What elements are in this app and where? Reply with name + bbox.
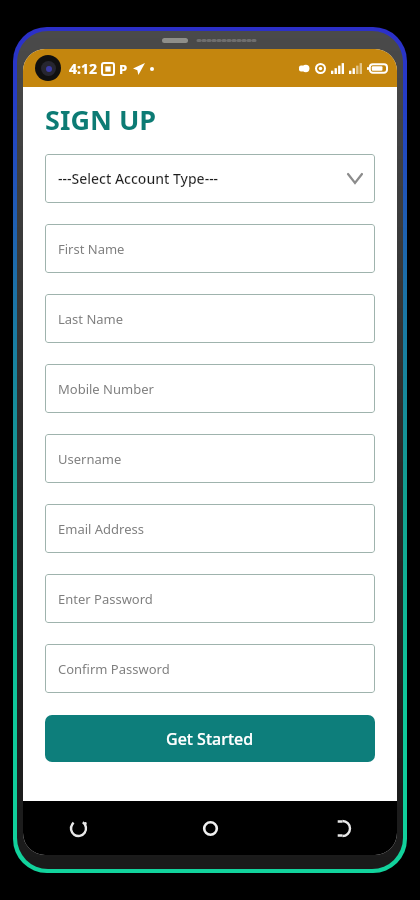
staticText: Get Started: [166, 728, 254, 750]
button[interactable]: Enter Password: [45, 574, 375, 623]
staticText: Confirm Password: [58, 660, 170, 678]
other: Expand account type: [348, 174, 362, 183]
button[interactable]: Mobile Number: [45, 364, 375, 413]
button[interactable]: Confirm Password: [45, 644, 375, 693]
button[interactable]: Home: [189, 807, 231, 849]
staticText: Email Address: [58, 520, 144, 538]
staticText: SIGN UP: [45, 101, 157, 138]
button[interactable]: First Name: [45, 224, 375, 273]
staticText: Username: [58, 450, 122, 468]
staticText: Enter Password: [58, 590, 153, 608]
button[interactable]: Email Address: [45, 504, 375, 553]
button[interactable]: Recent apps: [57, 807, 99, 849]
button[interactable]: Back: [321, 807, 363, 849]
staticText: P: [119, 60, 128, 78]
button[interactable]: ---Select Account Type---: [45, 154, 375, 203]
staticText: Mobile Number: [58, 380, 154, 398]
staticText: First Name: [58, 240, 125, 258]
staticText: ---Select Account Type---: [58, 169, 219, 188]
button[interactable]: Username: [45, 434, 375, 483]
staticText: 4:12: [69, 59, 97, 78]
staticText: Last Name: [58, 310, 124, 328]
button[interactable]: Last Name: [45, 294, 375, 343]
button[interactable]: Get Started: [45, 715, 375, 762]
